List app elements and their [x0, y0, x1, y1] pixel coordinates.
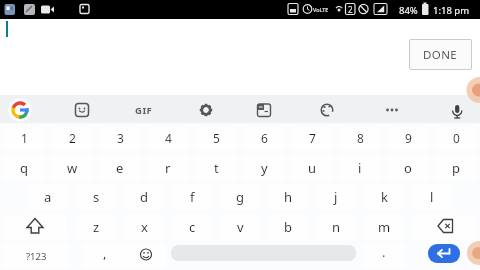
- button[interactable]: [0, 241, 72, 270]
- staticText: 2: [348, 4, 353, 15]
- staticText: p: [452, 159, 460, 177]
- button[interactable]: [360, 241, 408, 270]
- staticText: 8: [357, 130, 364, 146]
- button[interactable]: [192, 97, 218, 121]
- staticText: b: [284, 218, 292, 236]
- button[interactable]: 8: [336, 123, 384, 153]
- staticText: j: [334, 188, 338, 206]
- staticText: z: [93, 218, 100, 236]
- staticText: t: [214, 159, 219, 177]
- staticText: h: [284, 188, 293, 206]
- staticText: u: [308, 159, 317, 177]
- button[interactable]: [428, 244, 460, 263]
- staticText: i: [358, 159, 362, 177]
- button[interactable]: [8, 97, 34, 121]
- staticText: s: [93, 188, 100, 206]
- button[interactable]: [378, 97, 404, 121]
- staticText: l: [430, 188, 434, 206]
- button[interactable]: g: [216, 182, 264, 212]
- button[interactable]: m: [360, 212, 408, 242]
- button[interactable]: [0, 212, 70, 242]
- button[interactable]: e: [96, 153, 144, 183]
- staticText: 4: [165, 130, 172, 146]
- staticText: x: [141, 218, 148, 236]
- staticText: 2: [69, 130, 76, 146]
- staticText: 3: [117, 130, 124, 146]
- staticText: ?123: [26, 250, 47, 263]
- button[interactable]: 7: [288, 123, 336, 153]
- staticText: g: [236, 188, 244, 206]
- staticText: y: [261, 159, 268, 177]
- staticText: m: [378, 218, 391, 236]
- staticText: 0: [453, 130, 460, 146]
- button[interactable]: p: [432, 153, 480, 183]
- button[interactable]: 9: [384, 123, 432, 153]
- staticText: 7: [309, 130, 316, 146]
- button[interactable]: r: [144, 153, 192, 183]
- button[interactable]: x: [120, 212, 168, 242]
- staticText: v: [237, 218, 244, 236]
- button[interactable]: 4: [144, 123, 192, 153]
- button[interactable]: u: [288, 153, 336, 183]
- staticText: ,: [103, 244, 107, 262]
- staticText: f: [190, 188, 195, 206]
- button[interactable]: [314, 97, 340, 121]
- button[interactable]: 5: [192, 123, 240, 153]
- button[interactable]: [80, 241, 128, 270]
- button[interactable]: z: [72, 212, 120, 242]
- button[interactable]: 3: [96, 123, 144, 153]
- button[interactable]: w: [48, 153, 96, 183]
- button[interactable]: DONE: [409, 39, 472, 70]
- button[interactable]: a: [24, 182, 72, 212]
- button[interactable]: v: [216, 212, 264, 242]
- button[interactable]: [68, 97, 94, 121]
- button[interactable]: l: [408, 182, 456, 212]
- staticText: .: [382, 243, 386, 261]
- staticText: a: [44, 188, 52, 206]
- staticText: 1:18 pm: [433, 4, 470, 17]
- button[interactable]: [128, 97, 154, 121]
- staticText: VoLTE: [313, 6, 329, 13]
- staticText: q: [20, 159, 28, 177]
- staticText: n: [332, 218, 341, 236]
- button[interactable]: q: [0, 153, 48, 183]
- staticText: c: [189, 218, 196, 236]
- button[interactable]: t: [192, 153, 240, 183]
- button[interactable]: 0: [432, 123, 480, 153]
- staticText: d: [140, 188, 148, 206]
- button[interactable]: d: [120, 182, 168, 212]
- button[interactable]: [124, 241, 168, 270]
- button[interactable]: 2: [48, 123, 96, 153]
- staticText: k: [381, 188, 388, 206]
- staticText: GIF: [135, 104, 153, 117]
- button[interactable]: s: [72, 182, 120, 212]
- button[interactable]: y: [240, 153, 288, 183]
- button[interactable]: f: [168, 182, 216, 212]
- staticText: w: [67, 159, 78, 177]
- button[interactable]: 6: [240, 123, 288, 153]
- button[interactable]: k: [360, 182, 408, 212]
- button[interactable]: i: [336, 153, 384, 183]
- staticText: 1: [21, 130, 28, 146]
- staticText: o: [404, 159, 412, 177]
- button[interactable]: n: [312, 212, 360, 242]
- staticText: DONE: [423, 47, 458, 63]
- staticText: 9: [405, 130, 412, 146]
- button[interactable]: h: [264, 182, 312, 212]
- button[interactable]: c: [168, 212, 216, 242]
- button[interactable]: [444, 97, 470, 121]
- button[interactable]: o: [384, 153, 432, 183]
- button[interactable]: [409, 212, 479, 242]
- staticText: e: [116, 159, 124, 177]
- button[interactable]: j: [312, 182, 360, 212]
- staticText: r: [165, 159, 171, 177]
- staticText: 6: [261, 130, 268, 146]
- staticText: 84%: [399, 4, 418, 17]
- staticText: 5: [213, 130, 220, 146]
- button[interactable]: [250, 97, 276, 121]
- button[interactable]: 1: [0, 123, 48, 153]
- button[interactable]: b: [264, 212, 312, 242]
